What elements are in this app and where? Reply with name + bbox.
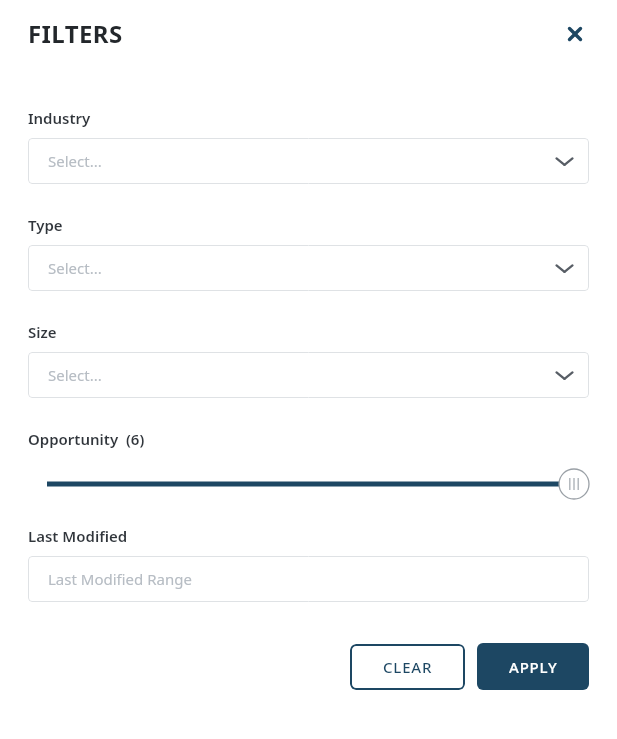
staticText: FILTERS (28, 17, 561, 50)
staticText: Size (28, 322, 57, 342)
button[interactable]: Type select (28, 245, 589, 291)
button[interactable]: Last Modified Range (28, 556, 589, 602)
staticText: Select... (48, 258, 555, 278)
staticText: Industry (28, 108, 91, 128)
staticText: Last Modified Range (48, 569, 574, 589)
button[interactable]: APPLY (477, 643, 589, 690)
staticText: CLEAR (383, 657, 433, 677)
button[interactable]: Size select (28, 352, 589, 398)
button[interactable]: Opportunity slider (28, 463, 589, 505)
button[interactable]: Close (561, 20, 589, 48)
staticText: Type (28, 215, 63, 235)
staticText: Select... (48, 151, 555, 171)
staticText: Select... (48, 365, 555, 385)
button[interactable]: CLEAR (350, 644, 465, 690)
staticText: Opportunity (6) (28, 429, 145, 449)
staticText: APPLY (509, 657, 558, 677)
staticText: Last Modified (28, 526, 128, 546)
button[interactable]: Industry select (28, 138, 589, 184)
